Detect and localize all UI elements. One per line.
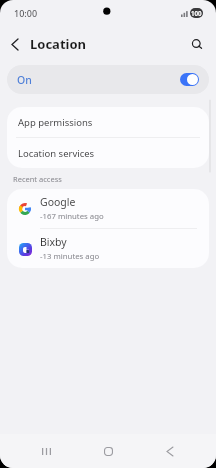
button[interactable]: Bixby [7,229,209,268]
button[interactable]: App permissions [7,107,209,137]
staticText: -13 minutes ago [40,251,100,262]
button[interactable]: Search [184,31,210,57]
staticText: Location services [18,147,95,160]
staticText: Location [30,35,86,53]
staticText: -167 minutes ago [40,211,104,222]
button[interactable]: Recents [30,435,62,467]
button[interactable]: Location services [7,138,209,168]
staticText: 10:00 [14,7,38,19]
staticText: Recent access [13,174,62,184]
button[interactable]: Google [7,189,209,228]
staticText: On [17,73,32,87]
staticText: 100 [191,9,202,17]
button[interactable]: Home [92,435,124,467]
staticText: Bixby [40,235,67,249]
button[interactable]: On [7,65,209,94]
staticText: App permissions [18,116,93,129]
staticText: Google [40,195,76,209]
button[interactable]: Back [154,435,186,467]
button[interactable]: Back [0,29,30,59]
